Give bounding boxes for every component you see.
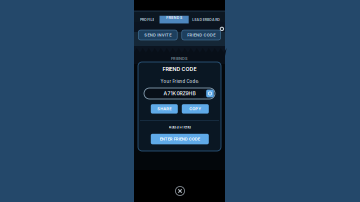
staticText: PROFILE xyxy=(140,18,154,22)
button[interactable]: Close xyxy=(175,186,184,195)
staticText: FRIEND CODE xyxy=(162,66,196,72)
staticText: Add a Friend xyxy=(168,125,190,129)
staticText: ENTER FRIEND CODE xyxy=(160,137,200,141)
button[interactable]: SHARE xyxy=(151,104,178,114)
staticText: LEADERBOARD xyxy=(192,18,220,22)
staticText: Your Friend Code: xyxy=(160,79,198,84)
staticText: FRIENDS xyxy=(171,56,188,61)
button[interactable]: SEND INVITE xyxy=(138,30,177,40)
staticText: COPY xyxy=(189,106,201,111)
staticText: FRIENDS xyxy=(166,16,182,20)
button[interactable]: FRIENDS xyxy=(165,11,194,22)
button[interactable]: COPY xyxy=(182,104,209,114)
staticText: SHARE xyxy=(157,106,171,111)
button[interactable]: Close panel xyxy=(220,27,224,31)
button[interactable]: PROFILE xyxy=(136,11,167,22)
button[interactable]: LEADERBOARD xyxy=(195,11,226,22)
staticText: A71K0RZ9HB xyxy=(163,90,195,96)
button[interactable]: Regenerate friend code xyxy=(206,90,214,97)
button[interactable]: FRIEND CODE xyxy=(182,30,221,40)
button[interactable]: ENTER FRIEND CODE xyxy=(151,134,209,144)
staticText: SEND INVITE xyxy=(144,33,171,37)
staticText: FRIEND CODE xyxy=(187,33,215,37)
